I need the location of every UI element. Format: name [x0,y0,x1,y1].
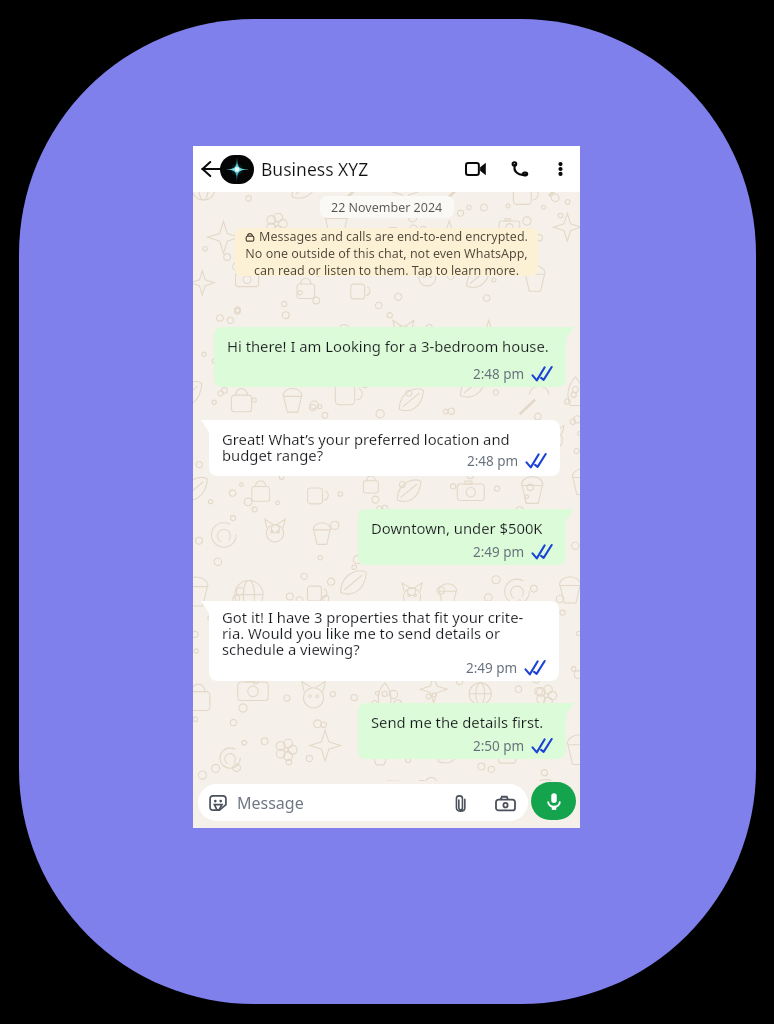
staticText: Send me the details first. [371,712,544,732]
staticText: Got it! I have 3 properties that fit you… [222,607,524,659]
staticText: Downtown, under $500K [371,518,543,538]
staticText: Message [237,792,304,814]
button[interactable]: Video call [461,155,489,183]
staticText: 2:49 pm [466,659,518,677]
button[interactable]: Call [506,155,534,183]
staticText: 2:49 pm [473,543,525,561]
button[interactable]: Downtown, under $500K [358,509,574,565]
button[interactable]: Back [196,154,226,184]
staticText: Business XYZ [261,157,369,181]
staticText: Hi there! I am Looking for a 3-bedroom h… [227,336,549,356]
button[interactable]: Messages and calls are end-to-end encryp… [235,228,538,276]
button[interactable]: Hi there! I am Looking for a 3-bedroom h… [214,327,574,387]
button[interactable]: Voice message [531,782,576,820]
button[interactable]: Stickers [208,794,228,812]
button[interactable]: Send me the details first. [358,703,574,759]
staticText: 2:48 pm [467,452,519,470]
staticText: Great! What’s your preferred location an… [222,429,510,465]
button[interactable]: Camera [494,793,516,813]
button[interactable]: Attach [451,793,471,813]
button[interactable]: Got it! I have 3 properties that fit you… [201,601,559,681]
staticText: can read or listen to them. Tap to learn… [254,262,519,276]
staticText: No one outside of this chat, not even Wh… [245,245,528,262]
button[interactable]: Great! What’s your preferred location an… [201,420,560,476]
staticText: 2:50 pm [473,737,525,755]
button[interactable]: Profile photo [220,155,254,184]
staticText: 2:48 pm [473,365,525,383]
staticText: 22 November 2024 [331,199,443,216]
button[interactable]: 22 November 2024 [320,196,454,218]
button[interactable]: Stickers [198,784,528,821]
button[interactable]: More options [546,155,574,183]
staticText: Messages and calls are end-to-end encryp… [259,228,528,245]
